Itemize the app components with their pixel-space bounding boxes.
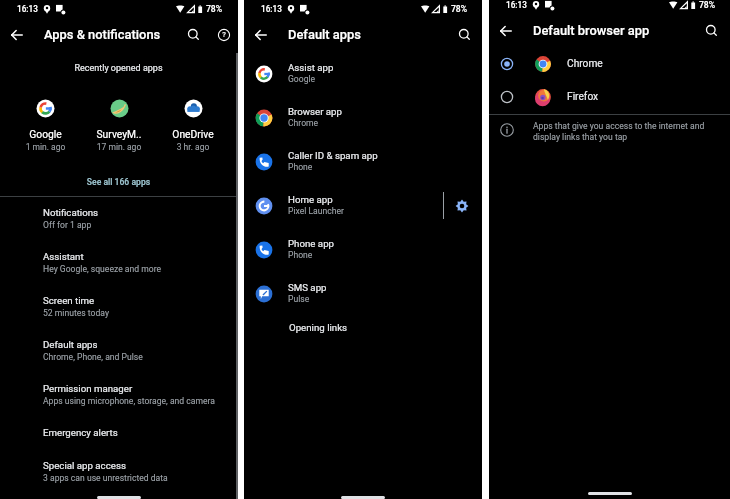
button[interactable]: Notifications bbox=[0, 201, 237, 245]
staticText: 78% bbox=[489, 0, 715, 10]
staticText: Permission manager bbox=[43, 383, 133, 394]
staticText: SMS app bbox=[288, 282, 327, 293]
staticText: Phone app bbox=[288, 238, 335, 249]
button[interactable]: Navigate up bbox=[496, 21, 516, 41]
staticText: 78% bbox=[0, 4, 222, 14]
staticText: Google bbox=[288, 74, 316, 84]
staticText: ? bbox=[214, 30, 234, 50]
staticText: SurveyM.. bbox=[82, 128, 156, 140]
button[interactable]: Search bbox=[702, 21, 722, 41]
button[interactable]: Special app access bbox=[0, 454, 237, 498]
staticText: Default apps bbox=[288, 27, 362, 42]
button[interactable]: Home app settings bbox=[451, 195, 473, 217]
staticText: Phone bbox=[288, 162, 313, 172]
staticText: 3 hr. ago bbox=[156, 142, 230, 152]
staticText: Assistant bbox=[43, 251, 84, 262]
button[interactable]: Navigate up bbox=[7, 25, 27, 45]
button[interactable]: Opening links bbox=[244, 316, 482, 356]
staticText: Chrome bbox=[567, 58, 603, 70]
button[interactable]: Chrome bbox=[489, 51, 730, 77]
button[interactable]: Default apps bbox=[0, 333, 237, 377]
button[interactable]: See all 166 apps bbox=[0, 173, 237, 192]
staticText: Recently opened apps bbox=[0, 63, 237, 74]
staticText: Pulse bbox=[288, 294, 310, 304]
button[interactable]: Phone app bbox=[244, 228, 482, 272]
staticText: Hey Google, squeeze and more bbox=[43, 264, 162, 274]
staticText: Firefox bbox=[567, 91, 599, 103]
staticText: Browser app bbox=[288, 106, 343, 117]
button[interactable]: Browser app bbox=[244, 96, 482, 140]
staticText: OneDrive bbox=[156, 128, 230, 140]
staticText: Assist app bbox=[288, 62, 334, 73]
staticText: Apps that give you access to the interne… bbox=[533, 121, 711, 142]
staticText: Opening links bbox=[289, 322, 348, 333]
button[interactable]: Permission manager bbox=[0, 377, 237, 421]
button[interactable]: Caller ID & spam app bbox=[244, 140, 482, 184]
button[interactable]: Search bbox=[184, 25, 204, 45]
staticText: See all 166 apps bbox=[0, 177, 237, 187]
staticText: Default browser app bbox=[533, 23, 650, 38]
staticText: Google bbox=[9, 128, 82, 140]
staticText: 16:13 bbox=[506, 0, 527, 10]
button[interactable]: Assist app bbox=[244, 52, 482, 96]
staticText: Apps using microphone, storage, and came… bbox=[43, 396, 216, 406]
staticText: 1 min. ago bbox=[9, 142, 82, 152]
staticText: 17 min. ago bbox=[82, 142, 156, 152]
button[interactable]: Help bbox=[214, 25, 234, 45]
button[interactable]: Home app bbox=[244, 184, 482, 228]
staticText: 16:13 bbox=[261, 4, 282, 14]
staticText: Phone bbox=[288, 250, 313, 260]
staticText: Pixel Launcher bbox=[288, 206, 344, 216]
staticText: Caller ID & spam app bbox=[288, 150, 378, 161]
staticText: Off for 1 app bbox=[43, 220, 92, 230]
button[interactable]: Emergency alerts bbox=[0, 421, 237, 454]
button[interactable]: Assistant bbox=[0, 245, 237, 289]
staticText: Apps & notifications bbox=[44, 27, 161, 42]
staticText: Home app bbox=[288, 194, 333, 205]
staticText: Screen time bbox=[43, 295, 95, 306]
staticText: Chrome, Phone, and Pulse bbox=[43, 352, 143, 362]
staticText: Chrome bbox=[288, 118, 319, 128]
staticText: 52 minutes today bbox=[43, 308, 109, 318]
button[interactable]: Screen time bbox=[0, 289, 237, 333]
button[interactable]: SMS app bbox=[244, 272, 482, 316]
staticText: 3 apps can use unrestricted data bbox=[43, 473, 168, 483]
button[interactable]: OneDrive bbox=[156, 99, 230, 152]
staticText: Notifications bbox=[43, 207, 99, 218]
button[interactable]: Google bbox=[9, 99, 82, 152]
staticText: 16:13 bbox=[17, 4, 38, 14]
button[interactable]: Search bbox=[455, 25, 475, 45]
staticText: Emergency alerts bbox=[43, 427, 118, 438]
button[interactable]: Firefox bbox=[489, 84, 730, 110]
button[interactable]: Navigate up bbox=[251, 25, 271, 45]
staticText: Default apps bbox=[43, 339, 98, 350]
staticText: Special app access bbox=[43, 460, 126, 471]
button[interactable]: SurveyM.. bbox=[82, 99, 156, 152]
staticText: 78% bbox=[244, 4, 467, 14]
